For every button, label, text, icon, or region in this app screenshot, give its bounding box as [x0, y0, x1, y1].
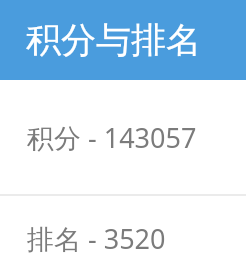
staticText: 排名 - 3520 [27, 220, 166, 257]
button[interactable]: 积分 - 143057 [0, 80, 246, 194]
staticText: 积分 - 143057 [27, 119, 197, 156]
button[interactable]: 排名 - 3520 [0, 196, 246, 280]
staticText: 积分与排名 [26, 18, 201, 62]
